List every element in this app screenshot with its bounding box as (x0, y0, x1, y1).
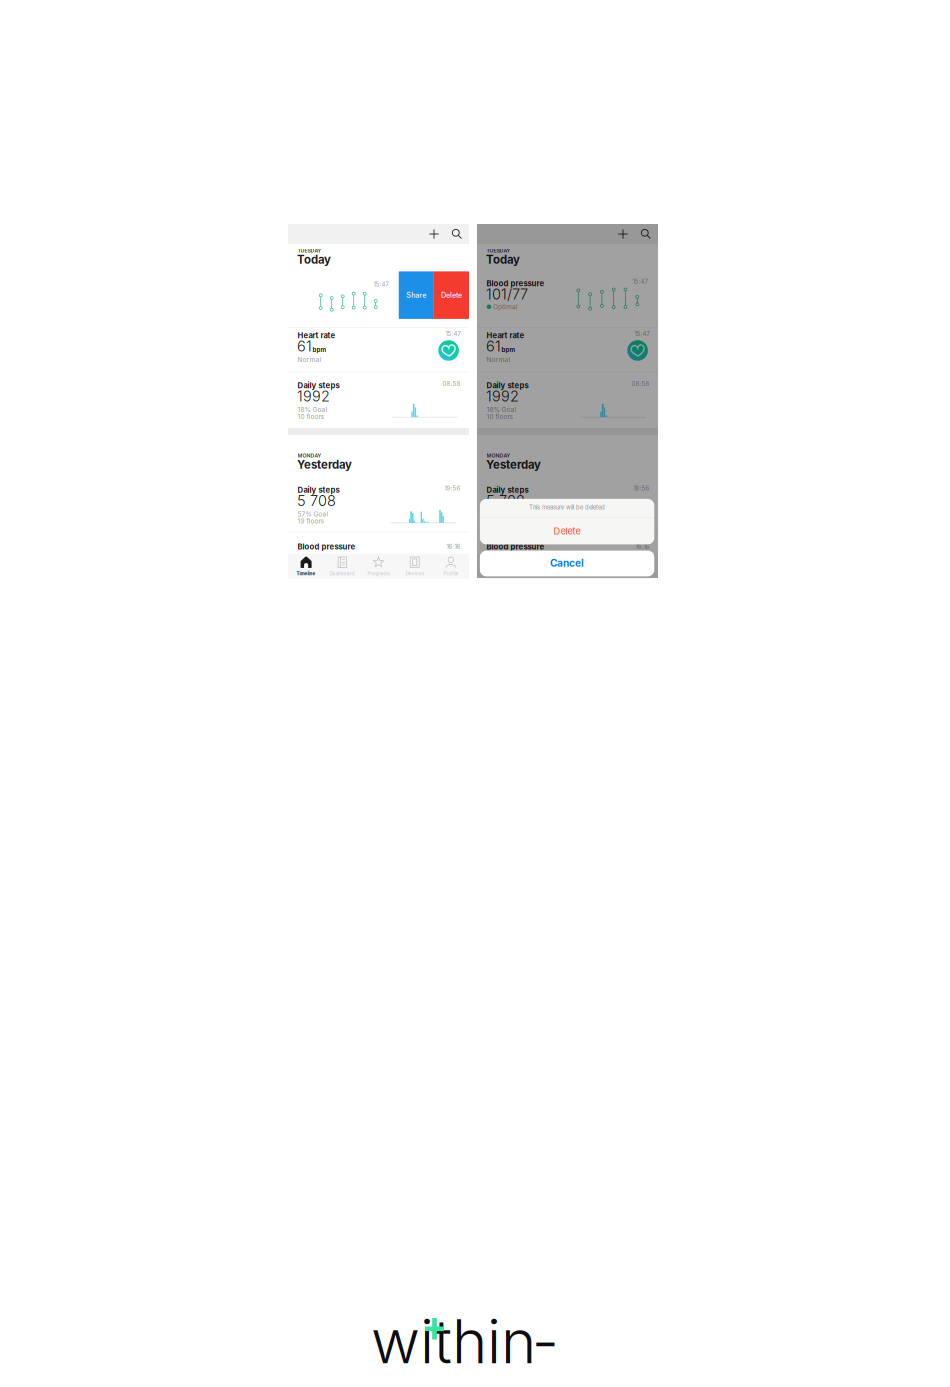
staticText: 18% Goal (297, 406, 327, 414)
button[interactable]: Profile (622, 554, 658, 578)
button[interactable]: Add (612, 224, 634, 244)
staticText: 1992 (297, 387, 330, 405)
staticText: 5 708 (486, 492, 525, 510)
staticText: Daily steps (486, 485, 528, 495)
staticText: 15:47 (632, 278, 647, 285)
button[interactable]: Timeline (477, 554, 513, 578)
staticText: Heart rate (486, 331, 524, 340)
staticText: MONDAY (297, 452, 321, 459)
staticText: MONDAY (486, 452, 510, 459)
staticText: Normal (297, 356, 321, 364)
staticText: 19:56 (444, 485, 460, 492)
staticText: bpm (501, 346, 515, 353)
button[interactable]: Profile (433, 554, 469, 578)
staticText: Today (486, 253, 520, 267)
staticText: Devices (406, 571, 424, 576)
staticText: Optimal (493, 303, 518, 311)
staticText: Cancel (550, 557, 584, 569)
staticText: Blood pressure (297, 542, 355, 551)
staticText: 10 floors (297, 413, 323, 421)
staticText: Yesterday (297, 458, 352, 471)
staticText: 5 708 (297, 492, 336, 510)
button[interactable]: Dashboard (324, 554, 360, 578)
staticText: Daily steps (297, 485, 339, 495)
button[interactable]: Programs (360, 554, 397, 578)
staticText: 1992 (486, 387, 519, 405)
button[interactable]: Delete (434, 271, 469, 319)
staticText: 08:58 (631, 380, 649, 387)
staticText: 61 (297, 337, 312, 355)
button[interactable]: Share (399, 271, 434, 319)
staticText: TUESDAY (297, 247, 321, 254)
staticText: 15:47 (445, 330, 460, 337)
staticText: 18% Goal (486, 406, 516, 414)
staticText: TUESDAY (486, 247, 510, 254)
staticText: Profile (443, 571, 458, 576)
button[interactable]: Add (423, 224, 445, 244)
button[interactable]: Devices (586, 554, 622, 578)
staticText: Normal (486, 356, 510, 364)
button[interactable]: Search (634, 224, 658, 244)
button[interactable]: Dashboard (513, 554, 549, 578)
staticText: Today (297, 253, 331, 267)
staticText: Share (406, 291, 426, 299)
staticText: Yesterday (486, 458, 541, 471)
staticText: Daily steps (297, 381, 339, 390)
staticText: Timeline (297, 571, 316, 576)
staticText: 16:16 (635, 543, 649, 550)
staticText: Dashboard (330, 571, 355, 576)
staticText: 15:47 (634, 330, 649, 337)
staticText: 10 floors (486, 413, 512, 421)
button[interactable]: Devices (397, 554, 433, 578)
staticText: This measure will be deleted (529, 504, 605, 511)
staticText: 08:58 (442, 380, 460, 387)
staticText: 57% Goal (297, 510, 328, 518)
button[interactable]: Search (445, 224, 469, 244)
staticText: Delete (554, 526, 581, 537)
staticText: Blood pressure (486, 542, 544, 551)
staticText: 101/77 (486, 285, 528, 303)
button[interactable]: Cancel (480, 551, 654, 576)
staticText: withings (371, 1305, 555, 1387)
staticText: Blood pressure (486, 279, 544, 288)
button[interactable]: Delete (480, 499, 654, 526)
staticText: bpm (312, 346, 326, 353)
staticText: 15:47 (373, 281, 388, 288)
staticText: Heart rate (297, 331, 335, 340)
staticText: Programs (367, 571, 389, 576)
staticText: Delete (441, 291, 462, 299)
staticText: 16:16 (446, 543, 460, 550)
button[interactable]: Timeline (288, 554, 324, 578)
staticText: 19 floors (297, 517, 323, 525)
staticText: Daily steps (486, 381, 528, 390)
staticText: 61 (486, 337, 501, 355)
button[interactable]: Programs (549, 554, 586, 578)
staticText: 19:56 (633, 485, 649, 492)
